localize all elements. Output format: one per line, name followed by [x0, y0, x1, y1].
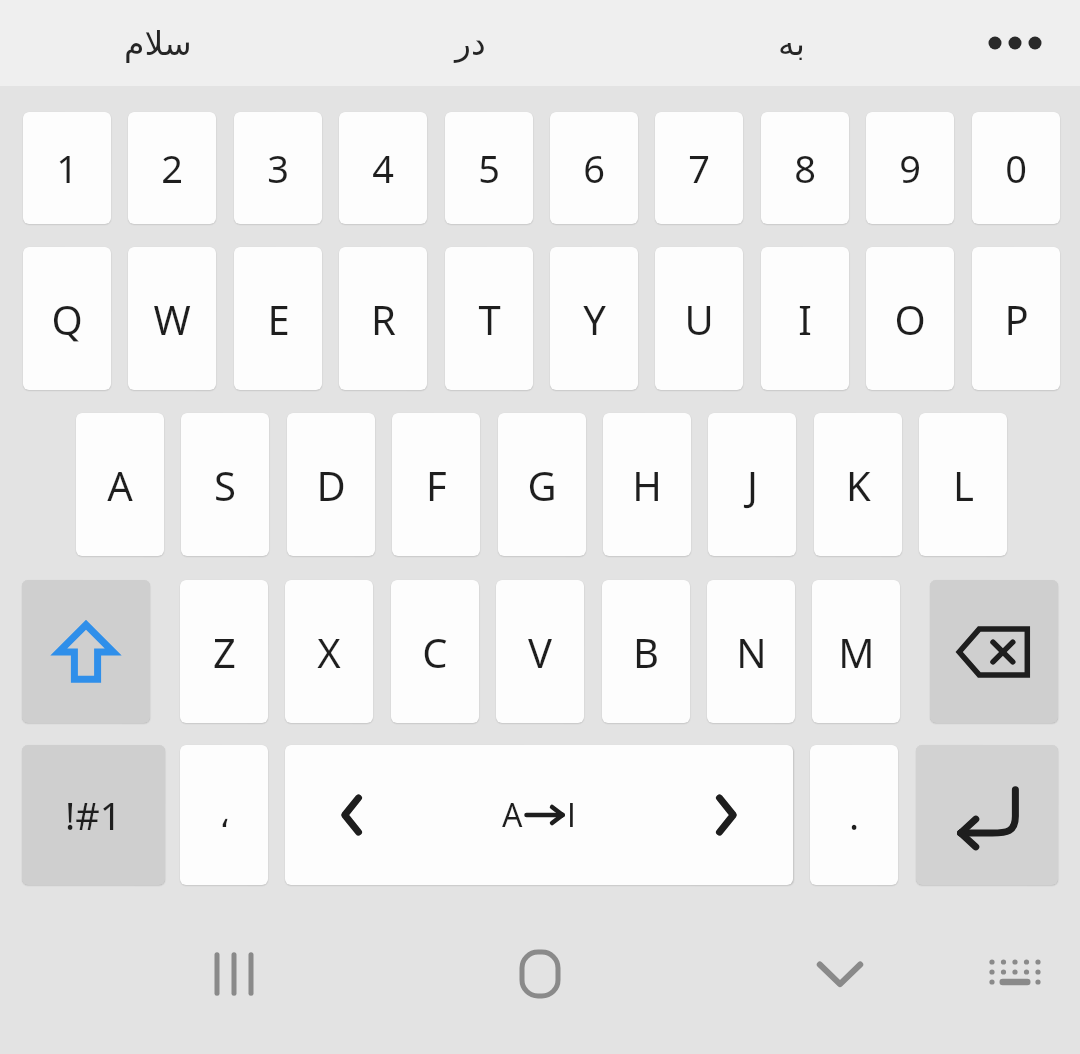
staticText: .: [849, 789, 860, 841]
staticText: U: [684, 292, 714, 346]
staticText: 0: [1005, 142, 1027, 194]
staticText: ،: [219, 795, 230, 835]
button[interactable]: Backspace: [930, 580, 1058, 723]
staticText: 1: [56, 142, 78, 194]
staticText: J: [747, 458, 758, 512]
staticText: K: [846, 458, 871, 512]
button[interactable]: 3: [234, 112, 322, 224]
staticText: سلام: [124, 24, 192, 62]
staticText: 2: [161, 142, 183, 194]
button[interactable]: Q: [23, 247, 111, 390]
button[interactable]: R: [339, 247, 427, 390]
staticText: 4: [372, 142, 394, 194]
staticText: 5: [478, 142, 500, 194]
button[interactable]: F: [392, 413, 480, 556]
staticText: X: [317, 625, 341, 679]
staticText: V: [528, 625, 552, 679]
button[interactable]: 9: [866, 112, 954, 224]
button[interactable]: P: [972, 247, 1060, 390]
button[interactable]: I: [761, 247, 849, 390]
button[interactable]: B: [602, 580, 690, 723]
button[interactable]: More suggestions: [955, 0, 1075, 86]
staticText: B: [633, 625, 659, 679]
button[interactable]: J: [708, 413, 796, 556]
button[interactable]: Hide keyboard: [780, 924, 900, 1024]
button[interactable]: به: [681, 0, 901, 86]
button[interactable]: T: [445, 247, 533, 390]
staticText: I: [798, 292, 812, 346]
staticText: N: [736, 625, 767, 679]
staticText: O: [894, 292, 926, 346]
button[interactable]: Z: [180, 580, 268, 723]
button[interactable]: 2: [128, 112, 216, 224]
button[interactable]: سلام: [48, 0, 268, 86]
button[interactable]: !#1: [22, 745, 165, 885]
staticText: E: [267, 292, 290, 346]
button[interactable]: G: [498, 413, 586, 556]
button[interactable]: 8: [761, 112, 849, 224]
button[interactable]: .: [810, 745, 898, 885]
staticText: Q: [51, 292, 83, 346]
button[interactable]: H: [603, 413, 691, 556]
button[interactable]: X: [285, 580, 373, 723]
staticText: به: [778, 24, 805, 62]
staticText: 9: [899, 142, 921, 194]
staticText: ا: [567, 797, 576, 834]
button[interactable]: در: [360, 0, 580, 86]
button[interactable]: Recents: [175, 924, 295, 1024]
button[interactable]: C: [391, 580, 479, 723]
button[interactable]: 1: [23, 112, 111, 224]
button[interactable]: 7: [655, 112, 743, 224]
staticText: W: [153, 292, 191, 346]
staticText: S: [214, 458, 236, 512]
button[interactable]: O: [866, 247, 954, 390]
staticText: F: [426, 458, 447, 512]
button[interactable]: D: [287, 413, 375, 556]
button[interactable]: K: [814, 413, 902, 556]
staticText: H: [632, 458, 662, 512]
button[interactable]: Space: [285, 745, 793, 885]
staticText: 6: [583, 142, 605, 194]
button[interactable]: A: [76, 413, 164, 556]
staticText: 8: [794, 142, 816, 194]
staticText: Y: [583, 292, 606, 346]
button[interactable]: 5: [445, 112, 533, 224]
staticText: !#1: [65, 789, 122, 841]
button[interactable]: ،: [180, 745, 268, 885]
staticText: L: [953, 458, 974, 512]
button[interactable]: E: [234, 247, 322, 390]
staticText: R: [371, 292, 396, 346]
staticText: P: [1004, 292, 1029, 346]
button[interactable]: W: [128, 247, 216, 390]
staticText: D: [316, 458, 346, 512]
button[interactable]: Home: [480, 924, 600, 1024]
button[interactable]: 6: [550, 112, 638, 224]
button[interactable]: M: [812, 580, 900, 723]
button[interactable]: 4: [339, 112, 427, 224]
staticText: A: [502, 793, 523, 837]
staticText: T: [478, 292, 501, 346]
button[interactable]: L: [919, 413, 1007, 556]
button[interactable]: Change keyboard: [955, 924, 1075, 1024]
staticText: 7: [688, 142, 710, 194]
staticText: G: [527, 458, 557, 512]
button[interactable]: Y: [550, 247, 638, 390]
button[interactable]: S: [181, 413, 269, 556]
button[interactable]: Enter: [916, 745, 1058, 885]
button[interactable]: U: [655, 247, 743, 390]
staticText: A: [107, 458, 133, 512]
button[interactable]: N: [707, 580, 795, 723]
staticText: C: [422, 625, 448, 679]
staticText: Z: [213, 625, 236, 679]
staticText: در: [455, 24, 486, 62]
button[interactable]: Shift: [22, 580, 150, 723]
button[interactable]: 0: [972, 112, 1060, 224]
button[interactable]: V: [496, 580, 584, 723]
staticText: 3: [267, 142, 289, 194]
staticText: M: [838, 625, 875, 679]
